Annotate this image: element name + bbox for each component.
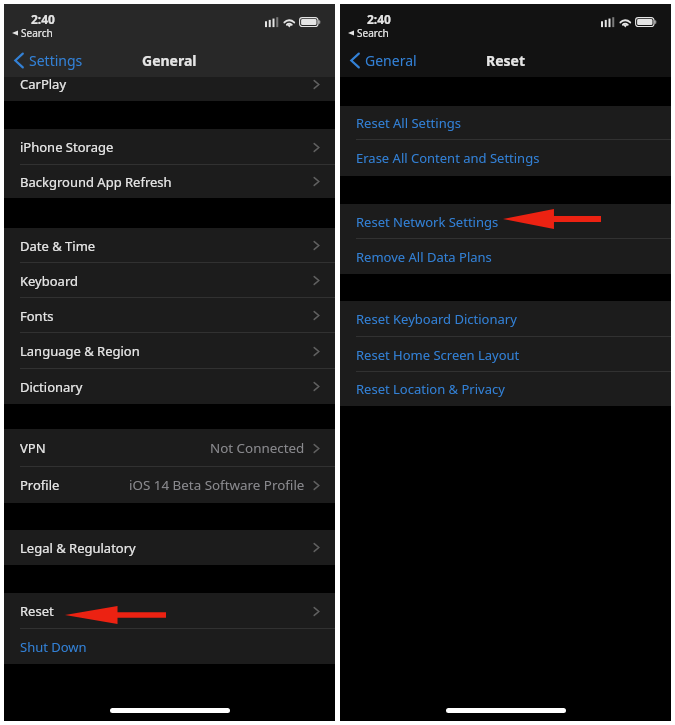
staticText: Reset xyxy=(486,51,526,70)
staticText: Language & Region xyxy=(20,342,140,360)
staticText: iOS 14 Beta Software Profile xyxy=(129,476,305,494)
button[interactable]: Keyboard xyxy=(4,263,335,298)
button[interactable]: Reset Home Screen Layout xyxy=(340,337,671,372)
button[interactable]: Reset All Settings xyxy=(340,106,671,140)
button[interactable]: Fonts xyxy=(4,298,335,333)
button[interactable]: Erase All Content and Settings xyxy=(340,140,671,176)
button[interactable]: Reset Location & Privacy xyxy=(340,372,671,406)
button[interactable]: VPN xyxy=(4,429,335,467)
staticText: Keyboard xyxy=(20,272,79,290)
staticText: Reset All Settings xyxy=(356,114,461,132)
button[interactable]: iPhone Storage xyxy=(4,129,335,165)
button[interactable]: Back to Settings xyxy=(4,47,89,74)
other: Pointer arrow xyxy=(503,209,601,229)
staticText: 2:40 xyxy=(31,11,55,27)
staticText: CarPlay xyxy=(20,77,67,93)
button[interactable]: Language & Region xyxy=(4,333,335,369)
staticText: Reset xyxy=(20,602,54,620)
staticText: Legal & Regulatory xyxy=(20,539,136,557)
staticText: Settings xyxy=(29,51,83,70)
staticText: Profile xyxy=(20,476,60,494)
staticText: Erase All Content and Settings xyxy=(356,149,540,167)
button[interactable]: Date & Time xyxy=(4,228,335,263)
button[interactable]: Dictionary xyxy=(4,369,335,404)
staticText: iPhone Storage xyxy=(20,138,114,156)
staticText: Reset Location & Privacy xyxy=(356,380,505,398)
button[interactable]: Reset Keyboard Dictionary xyxy=(340,301,671,337)
staticText: General xyxy=(365,51,417,70)
button[interactable]: Legal & Regulatory xyxy=(4,530,335,565)
staticText: Search xyxy=(21,26,53,40)
staticText: Reset Home Screen Layout xyxy=(356,346,520,364)
button[interactable]: Remove All Data Plans xyxy=(340,239,671,274)
button[interactable]: Reset Network Settings xyxy=(340,204,671,239)
staticText: General xyxy=(142,51,197,70)
staticText: Background App Refresh xyxy=(20,173,172,191)
staticText: Reset Keyboard Dictionary xyxy=(356,310,517,328)
staticText: Dictionary xyxy=(20,378,83,396)
button[interactable]: Reset xyxy=(4,593,335,629)
staticText: Fonts xyxy=(20,307,54,325)
other: Pointer arrow xyxy=(65,606,166,624)
staticText: Remove All Data Plans xyxy=(356,248,492,266)
staticText: Search xyxy=(357,26,389,40)
button[interactable]: Background App Refresh xyxy=(4,165,335,198)
button[interactable]: CarPlay xyxy=(4,77,335,101)
staticText: 2:40 xyxy=(367,11,391,27)
staticText: Reset Network Settings xyxy=(356,213,499,231)
staticText: Not Connected xyxy=(210,439,305,457)
staticText: Date & Time xyxy=(20,237,96,255)
button[interactable]: Back to General xyxy=(340,47,423,74)
button[interactable]: Profile xyxy=(4,467,335,503)
button[interactable]: Shut Down xyxy=(4,629,335,664)
staticText: VPN xyxy=(20,439,46,457)
staticText: Shut Down xyxy=(20,638,87,656)
